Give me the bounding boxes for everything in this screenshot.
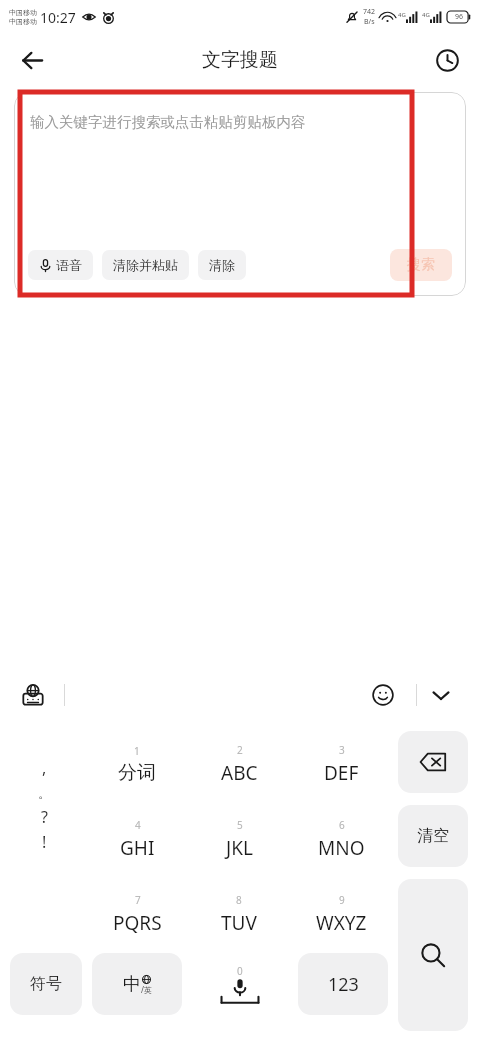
staticText: ?	[41, 806, 48, 828]
button[interactable]: 输入关键字进行搜索或点击粘贴剪贴板内容	[14, 92, 466, 296]
staticText: 中国移动	[9, 17, 37, 26]
button[interactable]: 语音	[28, 250, 93, 280]
staticText: 10:27	[40, 8, 76, 27]
staticText: 5	[237, 818, 243, 832]
staticText: 3	[339, 743, 345, 757]
button[interactable]: 符号	[10, 953, 82, 1015]
button[interactable]: 4	[88, 804, 186, 874]
staticText: B/s	[364, 17, 375, 27]
staticText: 9	[339, 893, 345, 907]
button[interactable]: 8	[190, 879, 288, 949]
staticText: !	[42, 831, 47, 853]
button[interactable]: 1	[88, 729, 186, 799]
button[interactable]: ?	[22, 789, 66, 845]
button[interactable]: Hide keyboard	[420, 674, 462, 716]
button[interactable]: 。	[22, 765, 66, 821]
button[interactable]: 搜索	[390, 249, 452, 281]
staticText: 8	[236, 893, 242, 907]
staticText: 。	[38, 785, 51, 801]
button[interactable]: 3	[292, 729, 390, 799]
staticText: 清空	[417, 826, 449, 846]
staticText: 1	[134, 744, 140, 758]
staticText: ABC	[221, 760, 258, 786]
button[interactable]: Input language	[12, 674, 54, 716]
staticText: 4	[135, 818, 141, 832]
staticText: 符号	[30, 974, 62, 994]
button[interactable]: Emoji	[362, 674, 404, 716]
button[interactable]: 清除并粘贴	[102, 250, 189, 280]
staticText: 7	[135, 893, 141, 907]
staticText: /英	[141, 984, 152, 995]
staticText: 语音	[56, 257, 82, 273]
staticText: 文字搜题	[202, 48, 278, 72]
staticText: 123	[328, 972, 359, 997]
staticText: ,	[42, 757, 47, 779]
button[interactable]: 清空	[398, 805, 468, 867]
staticText: 中国移动	[9, 8, 37, 17]
button[interactable]: Search	[398, 879, 468, 1031]
button[interactable]: 5	[190, 804, 288, 874]
button[interactable]: 2	[190, 729, 288, 799]
staticText: 0	[237, 964, 243, 978]
staticText: 4G	[422, 11, 430, 19]
button[interactable]: ,	[22, 740, 66, 796]
staticText: 清除并粘贴	[113, 257, 178, 273]
button[interactable]: 6	[292, 804, 390, 874]
button[interactable]: 7	[88, 879, 186, 949]
staticText: WXYZ	[316, 910, 367, 936]
staticText: PQRS	[113, 910, 162, 936]
staticText: 6	[339, 818, 345, 832]
staticText: 清除	[209, 257, 235, 273]
button[interactable]: !	[22, 814, 66, 870]
staticText: 搜索	[407, 256, 435, 274]
staticText: DEF	[324, 760, 359, 786]
button[interactable]: 清除	[198, 250, 246, 280]
staticText: JKL	[226, 835, 253, 861]
button[interactable]: 中	[92, 953, 182, 1015]
staticText: MNO	[318, 835, 365, 861]
staticText: 96	[455, 12, 464, 22]
button[interactable]: Delete	[398, 731, 468, 793]
staticText: 中	[123, 973, 141, 996]
staticText: 分词	[118, 761, 156, 785]
button[interactable]: Back	[10, 38, 54, 82]
staticText: 2	[237, 743, 243, 757]
staticText: 742	[363, 7, 376, 17]
staticText: GHI	[120, 835, 155, 861]
button[interactable]: Space / voice input	[192, 953, 288, 1015]
staticText: TUV	[221, 910, 257, 936]
button[interactable]: 123	[298, 953, 388, 1015]
button[interactable]: History	[426, 39, 468, 81]
staticText: 4G	[398, 11, 406, 19]
staticText: 输入关键字进行搜索或点击粘贴剪贴板内容	[30, 113, 306, 131]
button[interactable]: 9	[292, 879, 390, 949]
